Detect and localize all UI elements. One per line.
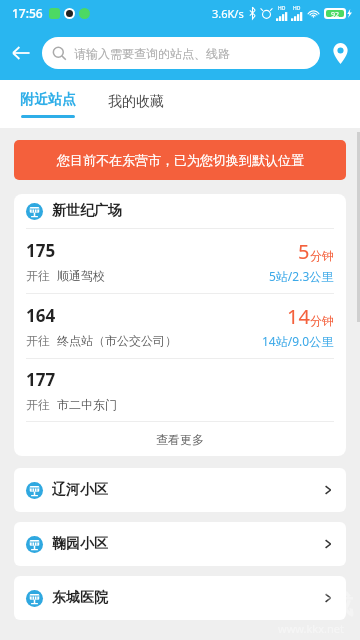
- button[interactable]: 175: [14, 229, 346, 293]
- button[interactable]: 164: [14, 294, 346, 358]
- staticText: 开往: [26, 268, 50, 283]
- button[interactable]: 附近站点: [18, 91, 78, 118]
- staticText: 东城医院: [52, 589, 322, 607]
- staticText: 辽河小区: [52, 481, 322, 499]
- staticText: 3.6K/s: [212, 6, 244, 21]
- button[interactable]: 您目前不在东营市，已为您切换到默认位置: [14, 140, 346, 180]
- staticText: 附近站点: [20, 91, 76, 109]
- button[interactable]: Location: [320, 33, 360, 73]
- staticText: 92: [331, 10, 340, 17]
- staticText: HD: [293, 5, 301, 12]
- button[interactable]: 新世纪广场: [14, 194, 346, 228]
- button[interactable]: Back: [0, 32, 42, 74]
- staticText: 鞠园小区: [52, 535, 322, 553]
- button[interactable]: 177: [14, 359, 346, 421]
- staticText: KK下载: [267, 585, 354, 621]
- button[interactable]: 东城医院: [14, 576, 346, 620]
- staticText: 开往: [26, 397, 50, 412]
- staticText: 5: [298, 238, 310, 265]
- button[interactable]: 查看更多: [14, 422, 346, 456]
- staticText: 顺通驾校: [57, 268, 105, 283]
- staticText: 164: [26, 304, 56, 327]
- staticText: 查看更多: [156, 432, 204, 447]
- staticText: 5站/2.3公里: [269, 268, 334, 284]
- staticText: 终点站（市公交公司）: [57, 333, 177, 348]
- staticText: 请输入需要查询的站点、线路: [74, 46, 230, 61]
- staticText: 市二中东门: [57, 397, 117, 412]
- staticText: 14: [287, 303, 310, 330]
- staticText: 14站/9.0公里: [262, 333, 334, 349]
- staticText: 分钟: [310, 313, 334, 328]
- staticText: 开往: [26, 333, 50, 348]
- button[interactable]: 我的收藏: [106, 91, 166, 113]
- staticText: 新世纪广场: [52, 202, 122, 220]
- staticText: 177: [26, 368, 56, 391]
- button[interactable]: 辽河小区: [14, 468, 346, 512]
- staticText: HD: [278, 5, 286, 12]
- button[interactable]: 请输入需要查询的站点、线路: [42, 37, 320, 69]
- staticText: 175: [26, 239, 56, 262]
- staticText: 分钟: [310, 248, 334, 263]
- staticText: 您目前不在东营市，已为您切换到默认位置: [57, 152, 304, 168]
- staticText: 17:56: [12, 5, 43, 21]
- button[interactable]: 鞠园小区: [14, 522, 346, 566]
- staticText: 我的收藏: [108, 93, 164, 111]
